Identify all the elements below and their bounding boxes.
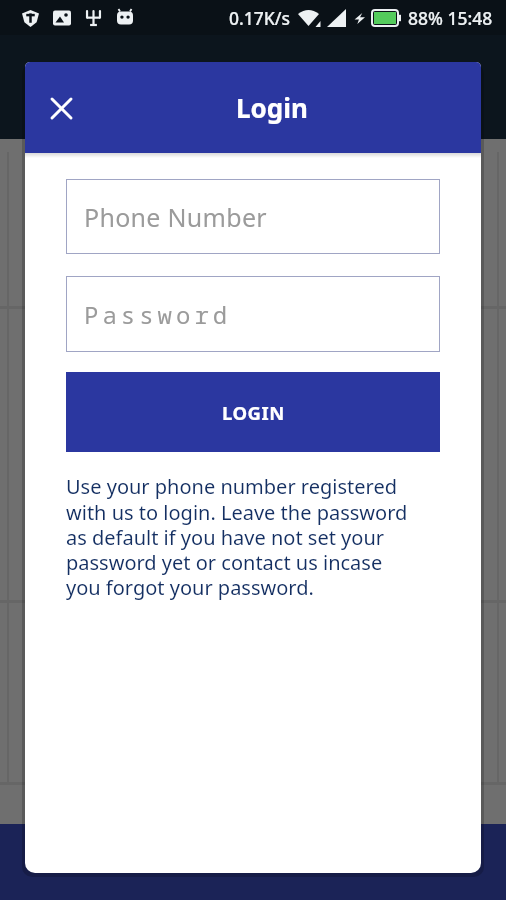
staticText: 0.17K/s	[229, 6, 291, 30]
staticText: Phone Number	[84, 200, 267, 234]
staticText: Login	[236, 90, 308, 125]
button[interactable]: Phone Number	[66, 179, 440, 254]
button[interactable]: Password	[66, 276, 440, 352]
staticText: LOGIN	[222, 400, 285, 425]
button[interactable]	[45, 92, 77, 124]
staticText: Password	[84, 298, 232, 331]
staticText: Use your phone number registered with us…	[66, 473, 408, 601]
button[interactable]: LOGIN	[66, 372, 440, 452]
staticText: 88% 15:48	[408, 6, 493, 30]
